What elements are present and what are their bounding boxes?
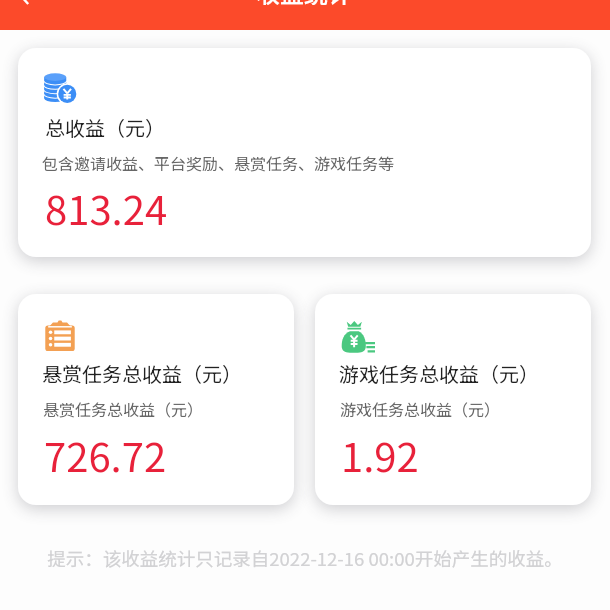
staticText: 提示：该收益统计只记录自2022-12-16 00:00开始产生的收益。 bbox=[0, 545, 610, 572]
staticText: 1.92 bbox=[341, 426, 419, 484]
staticText: 813.24 bbox=[45, 179, 168, 237]
staticText: 悬赏任务总收益（元） bbox=[42, 359, 242, 388]
staticText: 包含邀请收益、平台奖励、悬赏任务、游戏任务等 bbox=[42, 151, 395, 174]
staticText: 游戏任务总收益（元） bbox=[340, 397, 501, 420]
staticText: 总收益（元） bbox=[45, 113, 165, 142]
button[interactable]: Back bbox=[8, 0, 42, 11]
staticText: 游戏任务总收益（元） bbox=[339, 359, 539, 388]
button[interactable]: 悬赏任务总收益（元） bbox=[18, 294, 294, 505]
button[interactable]: 总收益（元） bbox=[18, 48, 591, 257]
staticText: 726.72 bbox=[44, 426, 167, 484]
staticText: 悬赏任务总收益（元） bbox=[43, 397, 204, 420]
button[interactable]: 游戏任务总收益（元） bbox=[315, 294, 591, 505]
staticText: 收益统计 bbox=[256, 0, 352, 5]
